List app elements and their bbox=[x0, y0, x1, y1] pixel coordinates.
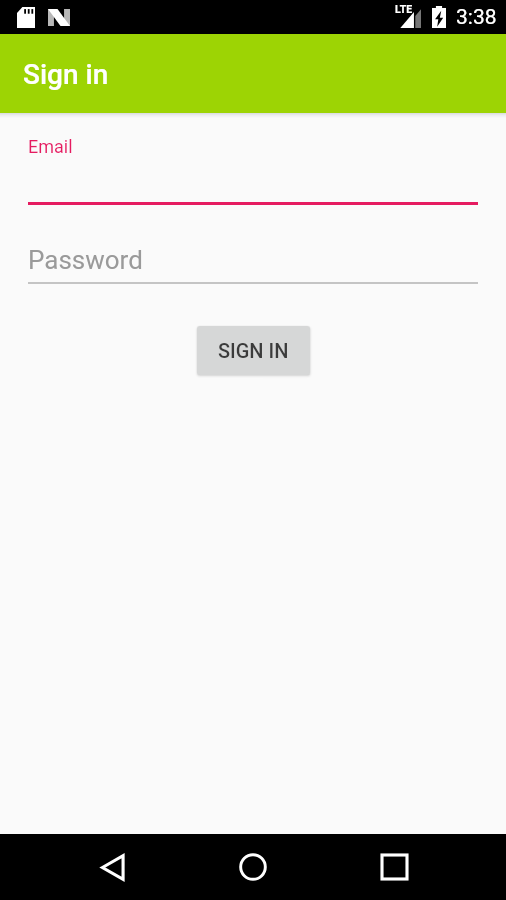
button[interactable]: Email bbox=[28, 123, 478, 206]
other: Mobile signal bbox=[399, 5, 421, 28]
button[interactable]: Password bbox=[28, 231, 478, 286]
button[interactable]: SIGN IN bbox=[197, 326, 310, 375]
button[interactable]: Home bbox=[206, 834, 300, 900]
other: Android N bbox=[48, 9, 70, 26]
button[interactable]: Back bbox=[66, 834, 160, 900]
staticText: 3:38 bbox=[456, 5, 497, 30]
other: SD card bbox=[17, 7, 35, 28]
staticText: LTE bbox=[395, 3, 413, 15]
staticText: Password bbox=[28, 245, 143, 275]
other: Battery charging bbox=[432, 6, 446, 28]
staticText: SIGN IN bbox=[218, 339, 289, 362]
button[interactable]: Recent apps bbox=[347, 834, 441, 900]
staticText: Email bbox=[28, 136, 73, 157]
staticText: Sign in bbox=[23, 58, 109, 91]
